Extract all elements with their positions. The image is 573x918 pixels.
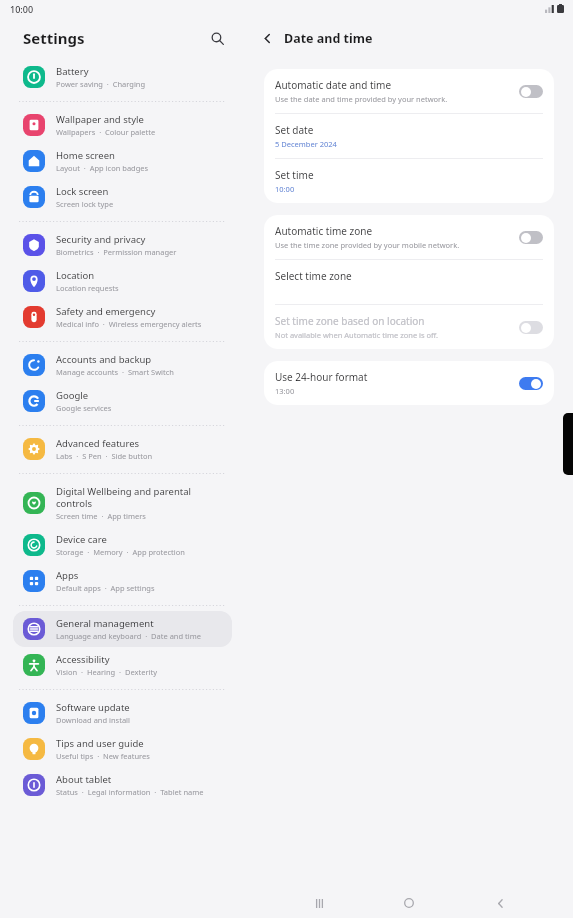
button[interactable]: Home	[392, 888, 426, 918]
staticText: Wallpapers · Colour palette	[56, 127, 156, 137]
staticText: Status · Legal information · Tablet name	[56, 787, 204, 797]
button[interactable]: Location	[13, 263, 232, 299]
staticText: Use 24-hour format	[275, 370, 368, 384]
button[interactable]: Set time	[264, 159, 554, 203]
staticText: Screen time · App timers	[56, 511, 146, 521]
button[interactable]: Home screen	[13, 143, 232, 179]
button[interactable]: General management	[13, 611, 232, 647]
staticText: Default apps · App settings	[56, 583, 155, 593]
staticText: 13:00	[275, 386, 295, 396]
staticText: Power saving · Charging	[56, 79, 146, 89]
button[interactable]: Recents	[302, 888, 336, 918]
staticText: Automatic date and time	[275, 78, 392, 92]
staticText: Tips and user guide	[56, 737, 144, 750]
staticText: Google	[56, 389, 89, 402]
button[interactable]: Toggle off	[519, 231, 543, 244]
staticText: Home screen	[56, 149, 115, 162]
staticText: Google services	[56, 403, 112, 413]
staticText: Layout · App icon badges	[56, 163, 149, 173]
button[interactable]: Set date	[264, 114, 554, 158]
staticText: Storage · Memory · App protection	[56, 547, 185, 557]
staticText: Language and keyboard · Date and time	[56, 631, 201, 641]
button[interactable]: Accounts and backup	[13, 347, 232, 383]
button[interactable]: Tips and user guide	[13, 731, 232, 767]
staticText: Vision · Hearing · Dexterity	[56, 667, 158, 677]
button[interactable]: Toggle off	[519, 85, 543, 98]
staticText: 10:00	[10, 3, 34, 15]
staticText: Accessibility	[56, 653, 110, 666]
staticText: Date and time	[284, 30, 373, 47]
staticText: 5 December 2024	[275, 139, 337, 149]
button[interactable]: Digital Wellbeing and parental controls	[13, 479, 232, 527]
button[interactable]: Set time zone based on location	[264, 305, 554, 349]
staticText: General management	[56, 617, 154, 630]
staticText: Medical info · Wireless emergency alerts	[56, 319, 202, 329]
staticText: Automatic time zone	[275, 224, 373, 238]
staticText: Apps	[56, 569, 79, 582]
button[interactable]: Back	[483, 888, 517, 918]
staticText: Digital Wellbeing and parental controls	[56, 485, 224, 510]
button[interactable]: Apps	[13, 563, 232, 599]
staticText: Lock screen	[56, 185, 109, 198]
staticText: About tablet	[56, 773, 112, 786]
staticText: Location	[56, 269, 95, 282]
button[interactable]: Back	[254, 25, 280, 51]
button[interactable]: Battery	[13, 59, 232, 95]
staticText: Safety and emergency	[56, 305, 156, 318]
button[interactable]: Wallpaper and style	[13, 107, 232, 143]
button[interactable]: Select time zone	[264, 260, 554, 304]
button[interactable]: Security and privacy	[13, 227, 232, 263]
button[interactable]: Device care	[13, 527, 232, 563]
button[interactable]: Advanced features	[13, 431, 232, 467]
button[interactable]: Lock screen	[13, 179, 232, 215]
staticText: Set date	[275, 123, 314, 137]
button[interactable]: Automatic date and time	[264, 69, 554, 113]
staticText: 10:00	[275, 184, 295, 194]
staticText: Device care	[56, 533, 107, 546]
staticText: Battery	[56, 65, 89, 78]
staticText: Settings	[23, 28, 85, 48]
staticText: Advanced features	[56, 437, 140, 450]
button[interactable]: Toggle off	[519, 321, 543, 334]
staticText: Download and install	[56, 715, 130, 725]
button[interactable]: About tablet	[13, 767, 232, 803]
button[interactable]: Toggle on	[519, 377, 543, 390]
staticText: Biometrics · Permission manager	[56, 247, 177, 257]
button[interactable]: Accessibility	[13, 647, 232, 683]
staticText: Set time	[275, 168, 314, 182]
staticText: Manage accounts · Smart Switch	[56, 367, 174, 377]
staticText: Wallpaper and style	[56, 113, 144, 126]
staticText: Use the date and time provided by your n…	[275, 94, 448, 104]
staticText: Set time zone based on location	[275, 314, 425, 328]
button[interactable]: Use 24-hour format	[264, 361, 554, 405]
button[interactable]: Edge panel handle	[563, 413, 573, 475]
button[interactable]: Software update	[13, 695, 232, 731]
staticText: Select time zone	[275, 269, 352, 283]
staticText: Security and privacy	[56, 233, 146, 246]
staticText: Labs · S Pen · Side button	[56, 451, 153, 461]
button[interactable]: Safety and emergency	[13, 299, 232, 335]
staticText: Location requests	[56, 283, 119, 293]
staticText: Useful tips · New features	[56, 751, 150, 761]
button[interactable]: Automatic time zone	[264, 215, 554, 259]
staticText: Use the time zone provided by your mobil…	[275, 240, 460, 250]
staticText: Software update	[56, 701, 130, 714]
staticText: Screen lock type	[56, 199, 114, 209]
staticText: Accounts and backup	[56, 353, 152, 366]
button[interactable]: Search	[203, 24, 231, 52]
staticText: Not available when Automatic time zone i…	[275, 330, 439, 340]
button[interactable]: Google	[13, 383, 232, 419]
